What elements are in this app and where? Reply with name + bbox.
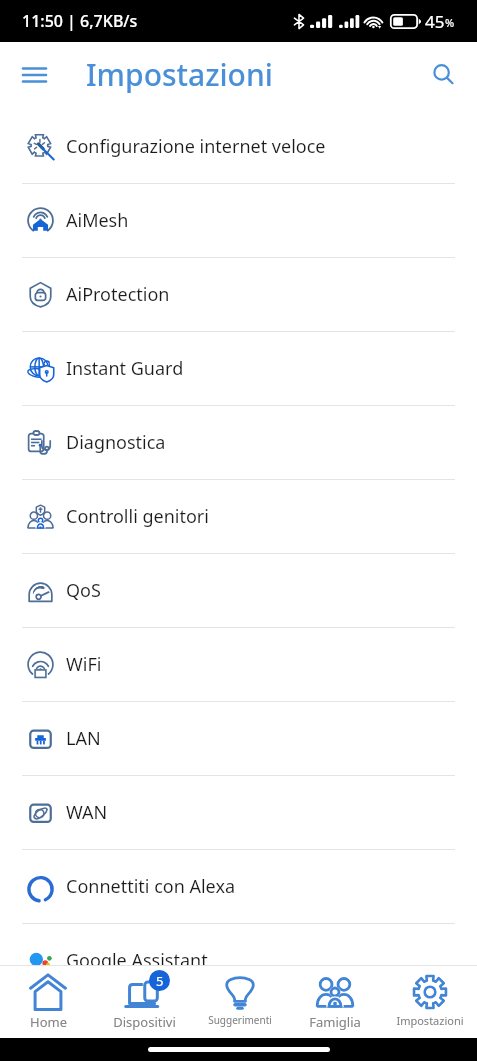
button[interactable]: Impostazioni <box>382 966 477 1038</box>
staticText: Impostazioni <box>396 1013 464 1028</box>
button[interactable]: Open navigation menu <box>10 51 58 99</box>
staticText: AiProtection <box>66 282 170 307</box>
staticText: Famiglia <box>309 1013 361 1031</box>
button[interactable]: Diagnostica <box>0 406 477 480</box>
staticText: Impostazioni <box>86 54 273 95</box>
staticText: Connettiti con Alexa <box>66 874 236 899</box>
staticText: WAN <box>66 800 108 825</box>
button[interactable]: Famiglia <box>287 966 382 1038</box>
button[interactable]: Search <box>422 53 466 97</box>
staticText: Instant Guard <box>66 356 184 381</box>
staticText: Diagnostica <box>66 430 166 455</box>
staticText: Configurazione internet veloce <box>66 134 326 159</box>
staticText: 11:50 | 6,7KB/s <box>22 10 138 32</box>
staticText: Suggerimenti <box>208 1013 272 1027</box>
button[interactable]: 5 <box>96 966 192 1038</box>
button[interactable]: Google Assistant <box>0 924 477 965</box>
staticText: Dispositivi <box>113 1013 176 1031</box>
button[interactable]: Controlli genitori <box>0 480 477 554</box>
staticText: QoS <box>66 578 101 603</box>
button[interactable]: LAN <box>0 702 477 776</box>
staticText: LAN <box>66 726 101 751</box>
button[interactable]: WiFi <box>0 628 477 702</box>
staticText: 45 <box>425 10 445 33</box>
staticText: Controlli genitori <box>66 504 209 529</box>
button[interactable]: QoS <box>0 554 477 628</box>
button[interactable]: WAN <box>0 776 477 850</box>
button[interactable]: AiMesh <box>0 184 477 258</box>
button[interactable]: Home <box>0 966 96 1038</box>
button[interactable]: Instant Guard <box>0 332 477 406</box>
button[interactable]: Configurazione internet veloce <box>0 110 477 184</box>
staticText: % <box>445 15 455 30</box>
staticText: Home <box>30 1013 67 1031</box>
staticText: WiFi <box>66 652 102 677</box>
button[interactable]: Suggerimenti <box>192 966 287 1038</box>
staticText: Google Assistant <box>66 948 208 965</box>
button[interactable]: AiProtection <box>0 258 477 332</box>
button[interactable]: Connettiti con Alexa <box>0 850 477 924</box>
staticText: AiMesh <box>66 208 129 233</box>
staticText: 5 <box>156 972 164 990</box>
